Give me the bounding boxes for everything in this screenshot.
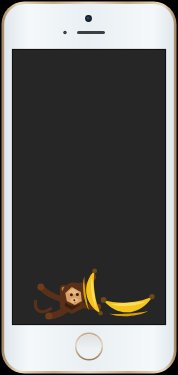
button[interactable]: Phone mockup with monkey and bananas on …: [0, 0, 178, 375]
